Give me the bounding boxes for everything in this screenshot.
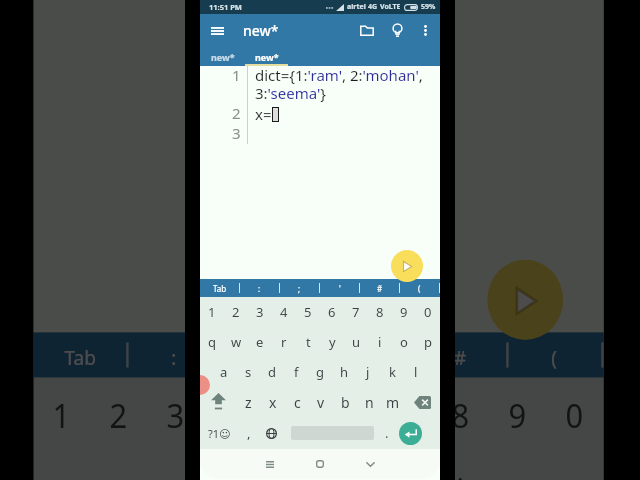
button[interactable]: 1 — [200, 297, 224, 327]
button[interactable]: 6 — [319, 378, 376, 453]
button[interactable]: y — [319, 453, 376, 480]
button[interactable]: Run — [487, 260, 563, 340]
button[interactable]: ( — [509, 332, 601, 378]
button[interactable]: d — [260, 357, 284, 387]
button[interactable]: Tab — [200, 279, 239, 297]
staticText: b — [341, 393, 350, 412]
button[interactable]: 3 — [248, 297, 272, 327]
button[interactable]: Menu — [205, 18, 230, 43]
button[interactable]: Change language — [260, 417, 283, 449]
button[interactable]: l — [404, 357, 428, 387]
staticText: d — [268, 363, 276, 381]
button[interactable]: new* — [245, 47, 288, 66]
button[interactable]: 9 — [490, 378, 547, 453]
button[interactable]: v — [309, 387, 333, 417]
button[interactable]: ; — [280, 279, 319, 297]
button[interactable]: z — [236, 387, 261, 417]
staticText: 7 — [395, 393, 414, 438]
staticText: 1 — [208, 303, 216, 321]
staticText: s — [245, 363, 252, 381]
button[interactable]: 8 — [433, 378, 490, 453]
button[interactable]: Shift — [200, 387, 236, 417]
button[interactable]: b — [333, 387, 357, 417]
button[interactable]: ' — [319, 332, 411, 378]
button[interactable]: 7 — [344, 297, 368, 327]
button[interactable]: # — [414, 332, 506, 378]
button[interactable]: 7 — [376, 378, 433, 453]
staticText: 59% — [421, 2, 436, 12]
button[interactable]: e — [148, 453, 205, 480]
button[interactable]: : — [129, 332, 221, 378]
button[interactable]: 2 — [224, 297, 248, 327]
button[interactable]: k — [380, 357, 404, 387]
button[interactable]: Recents — [256, 450, 284, 478]
button[interactable]: y — [320, 327, 344, 357]
button[interactable]: More options — [413, 18, 438, 43]
button[interactable]: 3 — [148, 378, 205, 453]
button[interactable]: w — [224, 327, 248, 357]
button[interactable]: t — [262, 453, 319, 480]
button[interactable]: 0 — [547, 378, 604, 453]
button[interactable]: e — [248, 327, 272, 357]
button[interactable]: Open folder — [354, 18, 379, 43]
staticText: 4 — [280, 303, 288, 321]
button[interactable]: 6 — [320, 297, 344, 327]
button[interactable]: 4 — [205, 378, 262, 453]
button[interactable]: r — [272, 327, 296, 357]
button[interactable]: Hint — [385, 18, 410, 43]
button[interactable]: 4 — [272, 297, 296, 327]
button[interactable]: c — [285, 387, 309, 417]
button[interactable]: 8 — [368, 297, 392, 327]
button[interactable]: q — [200, 327, 224, 357]
button[interactable]: i — [368, 327, 392, 357]
button[interactable]: x — [261, 387, 285, 417]
button[interactable]: ; — [224, 332, 316, 378]
button[interactable]: o — [392, 327, 416, 357]
button[interactable]: j — [356, 357, 380, 387]
button[interactable]: p — [416, 327, 440, 357]
button[interactable]: u — [344, 327, 368, 357]
button[interactable]: # — [360, 279, 399, 297]
staticText: 0 — [424, 303, 432, 321]
button[interactable]: Tab — [34, 332, 126, 378]
button[interactable]: 0 — [416, 297, 440, 327]
button[interactable]: g — [308, 357, 332, 387]
staticText: 2 — [232, 103, 241, 123]
button[interactable]: , — [238, 417, 260, 449]
button[interactable]: i — [433, 453, 490, 480]
button[interactable]: Backspace — [405, 387, 440, 417]
button[interactable]: 5 — [262, 378, 319, 453]
button[interactable]: 9 — [392, 297, 416, 327]
button[interactable]: t — [296, 327, 320, 357]
button[interactable]: Enter — [399, 422, 422, 445]
button[interactable]: ( — [400, 279, 439, 297]
button[interactable]: Home — [306, 450, 334, 478]
staticText: Tab — [64, 342, 98, 370]
button[interactable]: Run — [391, 250, 423, 282]
button[interactable]: new* — [202, 47, 243, 66]
button[interactable]: a — [212, 357, 236, 387]
staticText: p — [424, 333, 432, 351]
button[interactable]: n — [357, 387, 381, 417]
button[interactable]: h — [332, 357, 356, 387]
button[interactable]: Hide keyboard — [356, 450, 384, 478]
button[interactable]: 2 — [91, 378, 148, 453]
staticText: f — [294, 363, 299, 381]
button[interactable]: 5 — [296, 297, 320, 327]
button[interactable]: s — [236, 357, 260, 387]
button[interactable]: ' — [320, 279, 359, 297]
button[interactable]: m — [381, 387, 405, 417]
button[interactable]: f — [284, 357, 308, 387]
button[interactable]: 1 — [34, 378, 91, 453]
button[interactable]: : — [240, 279, 279, 297]
button[interactable]: . — [374, 417, 399, 449]
button[interactable]: ?1☺ — [200, 417, 238, 449]
